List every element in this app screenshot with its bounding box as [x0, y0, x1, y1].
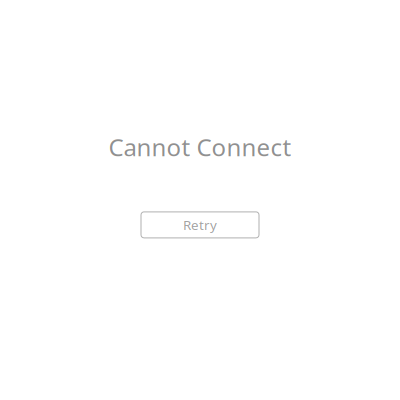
- button[interactable]: Retry: [141, 212, 259, 238]
- staticText: Cannot Connect: [108, 131, 291, 163]
- staticText: Retry: [183, 216, 217, 234]
